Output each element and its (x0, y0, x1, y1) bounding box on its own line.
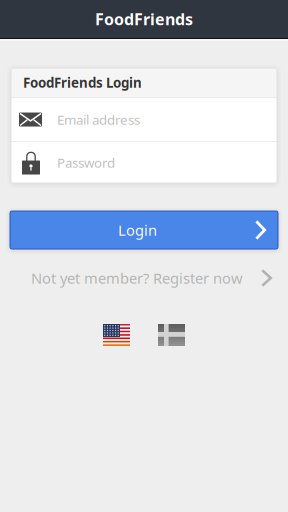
staticText: FoodFriends (95, 8, 193, 30)
button[interactable]: Password (11, 142, 277, 183)
button[interactable]: Finnish (158, 324, 185, 346)
button[interactable]: Login (0, 211, 288, 249)
button[interactable]: Email address (11, 98, 277, 141)
staticText: Login (118, 220, 157, 240)
staticText: Password (57, 154, 115, 171)
staticText: FoodFriends Login (23, 74, 142, 91)
staticText: Email address (57, 111, 140, 128)
staticText: Not yet member? Register now (31, 268, 243, 288)
button[interactable]: English (103, 324, 130, 346)
button[interactable]: Not yet member? Register now (0, 264, 288, 292)
